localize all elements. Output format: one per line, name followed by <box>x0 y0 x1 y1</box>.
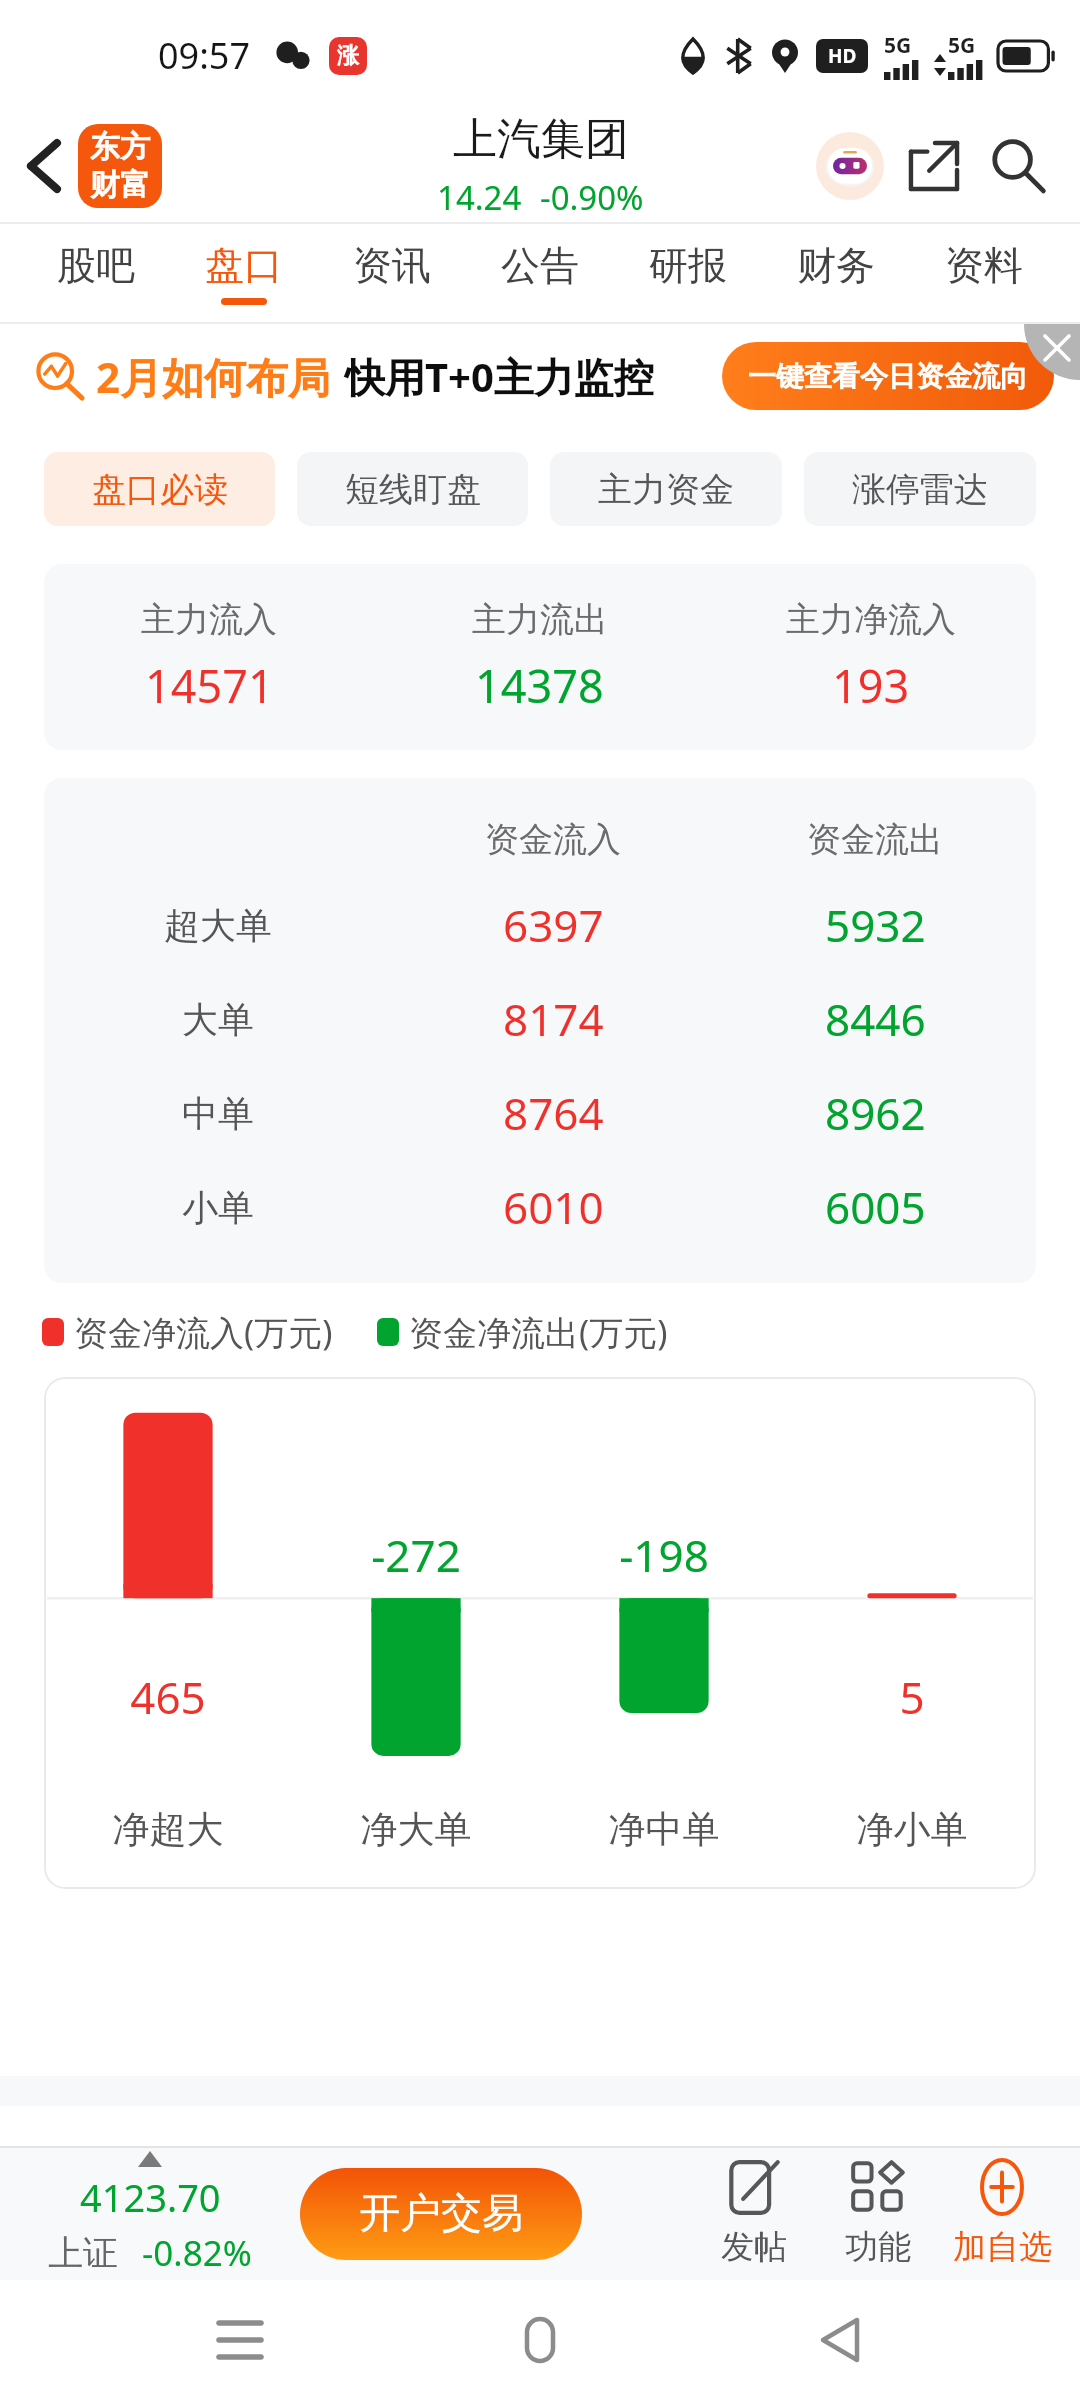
staticText: 5932 <box>825 895 926 955</box>
button[interactable]: 研报 <box>614 224 762 322</box>
staticText: 东方 <box>90 128 150 166</box>
button[interactable]: AI assistant <box>808 124 892 208</box>
staticText: 盘口必读 <box>92 468 228 511</box>
staticText: 上证 <box>48 2231 118 2275</box>
staticText: 资金净流入(万元) <box>74 1309 333 1355</box>
staticText: 净中单 <box>540 1806 788 1853</box>
staticText: 主力流出 <box>472 598 608 641</box>
button[interactable]: 一键查看今日资金流向 <box>722 342 1054 410</box>
button[interactable]: 发帖 <box>692 2160 816 2268</box>
staticText: 主力资金 <box>598 468 734 511</box>
staticText: 主力流入 <box>141 598 277 641</box>
staticText: 上汽集团 <box>453 112 629 167</box>
staticText: 短线盯盘 <box>345 468 481 511</box>
staticText: HD <box>828 43 857 69</box>
button[interactable]: Recent apps <box>180 2280 300 2400</box>
staticText: 资讯 <box>353 241 431 290</box>
staticText: 14571 <box>145 655 274 716</box>
staticText: -0.82% <box>142 2229 252 2277</box>
staticText: 8962 <box>825 1083 926 1143</box>
staticText: 盘口 <box>205 241 283 290</box>
button[interactable]: 中单 <box>44 1083 1036 1143</box>
staticText: -272 <box>292 1525 540 1585</box>
button[interactable]: Back <box>780 2280 900 2400</box>
button[interactable]: Search <box>976 124 1060 208</box>
staticText: 研报 <box>649 241 727 290</box>
staticText: 8174 <box>503 989 604 1049</box>
staticText: 193 <box>832 655 910 716</box>
staticText: 8446 <box>825 989 926 1049</box>
staticText: 股吧 <box>57 241 135 290</box>
staticText: 一键查看今日资金流向 <box>748 359 1028 394</box>
button[interactable]: 财务 <box>762 224 910 322</box>
button[interactable]: 主力资金 <box>550 452 782 526</box>
button[interactable]: 股吧 <box>22 224 170 322</box>
button[interactable]: Home <box>480 2280 600 2400</box>
button[interactable]: 4123.70 <box>0 2151 300 2277</box>
staticText: 功能 <box>845 2226 911 2268</box>
staticText: 14378 <box>475 655 604 716</box>
button[interactable]: 2月如何布局 <box>0 324 1080 428</box>
staticText: 8764 <box>503 1083 604 1143</box>
button[interactable]: 小单 <box>44 1177 1036 1237</box>
button[interactable]: 主力流入 <box>44 564 1036 750</box>
staticText: 5 <box>788 1667 1036 1727</box>
staticText: 公告 <box>501 241 579 290</box>
staticText: 09:57 <box>158 31 251 80</box>
staticText: 开户交易 <box>359 2188 523 2240</box>
button[interactable]: Back <box>6 128 82 204</box>
button[interactable]: 加自选 <box>940 2160 1064 2268</box>
staticText: 6010 <box>503 1177 604 1237</box>
staticText: 465 <box>44 1667 292 1727</box>
staticText: 发帖 <box>721 2226 787 2268</box>
staticText: 小单 <box>182 1185 254 1230</box>
staticText: -0.90% <box>540 175 644 220</box>
button[interactable]: 盘口必读 <box>44 452 275 526</box>
staticText: 14.24 <box>437 175 522 220</box>
staticText: 涨 <box>337 42 359 70</box>
staticText: 大单 <box>182 997 254 1042</box>
staticText: 5G <box>884 31 912 60</box>
staticText: 财务 <box>797 241 875 290</box>
staticText: 加自选 <box>953 2226 1052 2268</box>
staticText: 净小单 <box>788 1806 1036 1853</box>
button[interactable]: 涨停雷达 <box>804 452 1036 526</box>
staticText: 超大单 <box>164 903 272 948</box>
staticText: 资料 <box>945 241 1023 290</box>
button[interactable]: 资讯 <box>318 224 466 322</box>
button[interactable]: 公告 <box>466 224 614 322</box>
staticText: 净大单 <box>292 1806 540 1853</box>
staticText: 财富 <box>90 166 150 204</box>
button[interactable]: 功能 <box>816 2160 940 2268</box>
staticText: 6397 <box>503 895 604 955</box>
button[interactable]: Share <box>892 124 976 208</box>
staticText: 资金流入 <box>485 818 621 861</box>
staticText: 净超大 <box>44 1806 292 1853</box>
staticText: 2月如何布局 <box>96 348 331 405</box>
staticText: 中单 <box>182 1091 254 1136</box>
button[interactable]: Close ad <box>1024 324 1080 380</box>
button[interactable]: 盘口 <box>170 224 318 322</box>
staticText: 6005 <box>825 1177 926 1237</box>
staticText: 资金流出 <box>807 818 943 861</box>
button[interactable]: 大单 <box>44 989 1036 1049</box>
button[interactable]: 短线盯盘 <box>297 452 528 526</box>
button[interactable]: 资料 <box>910 224 1058 322</box>
staticText: -198 <box>540 1525 788 1585</box>
staticText: 涨停雷达 <box>852 468 988 511</box>
button[interactable]: Net capital flow chart <box>44 1377 1036 1889</box>
button[interactable]: East Money home <box>78 124 162 208</box>
staticText: 资金净流出(万元) <box>409 1309 668 1355</box>
staticText: 快用T+0主力监控 <box>345 349 654 404</box>
button[interactable]: 超大单 <box>44 895 1036 955</box>
staticText: 5G <box>948 31 976 60</box>
staticText: 4123.70 <box>80 2171 221 2223</box>
button[interactable]: 开户交易 <box>300 2168 582 2260</box>
staticText: 主力净流入 <box>786 598 956 641</box>
